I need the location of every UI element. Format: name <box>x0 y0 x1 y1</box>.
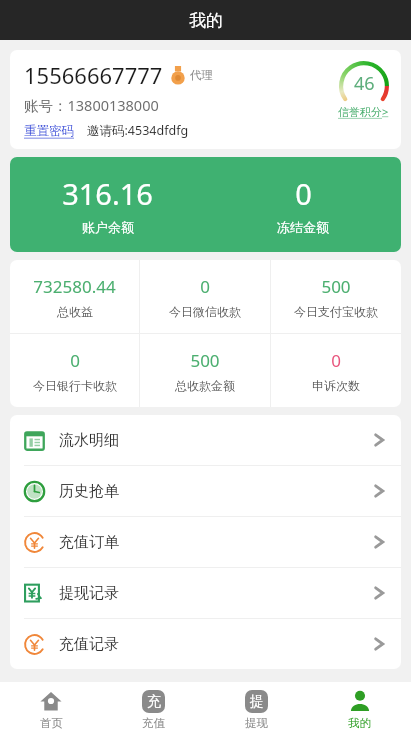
staticText: 500 <box>190 349 220 372</box>
other: 提 <box>245 690 268 713</box>
staticText: 流水明细 <box>59 431 119 450</box>
button[interactable]: 提 <box>205 682 308 737</box>
staticText: 提现记录 <box>59 584 119 603</box>
button[interactable]: 提现记录 <box>10 568 401 618</box>
staticText: 0 <box>295 174 312 213</box>
other: Agent medal <box>171 66 185 84</box>
staticText: 充值订单 <box>59 533 119 552</box>
staticText: 邀请码:4534dfdfg <box>87 122 189 139</box>
button[interactable]: 充值订单 <box>10 517 401 567</box>
staticText: 0 <box>200 275 210 298</box>
staticText: 代理 <box>190 68 213 82</box>
button[interactable]: 316.16 <box>10 157 401 252</box>
button[interactable]: 0 <box>140 260 270 333</box>
button[interactable]: 732580.44 <box>10 260 139 333</box>
staticText: 46 <box>354 71 375 96</box>
button[interactable]: Home <box>0 682 102 737</box>
button[interactable]: 46 <box>338 61 389 119</box>
button[interactable]: 500 <box>271 260 401 333</box>
staticText: 总收款金额 <box>175 378 235 393</box>
staticText: 充 <box>147 693 161 711</box>
button[interactable]: 历史抢单 <box>10 466 401 516</box>
button[interactable]: Profile <box>308 682 411 737</box>
staticText: 732580.44 <box>33 275 116 298</box>
staticText: 今日支付宝收款 <box>294 304 378 319</box>
other: Home <box>39 689 63 713</box>
staticText: 历史抢单 <box>59 482 119 501</box>
staticText: 提 <box>250 693 264 711</box>
other: 充 <box>142 690 165 713</box>
button[interactable]: 0 <box>271 334 401 407</box>
button[interactable]: 0 <box>10 334 139 407</box>
staticText: 316.16 <box>62 174 153 213</box>
staticText: 账户余额 <box>82 219 134 235</box>
staticText: 提现 <box>245 716 268 730</box>
button[interactable]: 流水明细 <box>10 415 401 465</box>
staticText: 充值 <box>142 716 165 730</box>
button[interactable]: 充 <box>102 682 205 737</box>
staticText: 总收益 <box>57 304 93 319</box>
button[interactable]: 重置密码 <box>24 123 74 139</box>
staticText: 账号：13800138000 <box>24 95 159 115</box>
staticText: 我的 <box>189 10 223 31</box>
staticText: 信誉积分> <box>338 104 389 119</box>
staticText: 我的 <box>348 716 371 730</box>
staticText: 充值记录 <box>59 635 119 654</box>
button[interactable]: 500 <box>140 334 270 407</box>
other: Profile <box>348 689 372 713</box>
button[interactable]: 15566667777 <box>10 50 401 149</box>
staticText: 重置密码 <box>24 123 74 139</box>
staticText: 今日银行卡收款 <box>33 378 117 393</box>
staticText: 今日微信收款 <box>169 304 241 319</box>
staticText: 冻结金额 <box>277 219 329 235</box>
staticText: 0 <box>70 349 80 372</box>
staticText: 申诉次数 <box>312 378 360 393</box>
staticText: 0 <box>331 349 341 372</box>
staticText: 15566667777 <box>24 60 163 90</box>
button[interactable]: 充值记录 <box>10 619 401 669</box>
staticText: 500 <box>321 275 351 298</box>
staticText: 首页 <box>40 716 63 730</box>
